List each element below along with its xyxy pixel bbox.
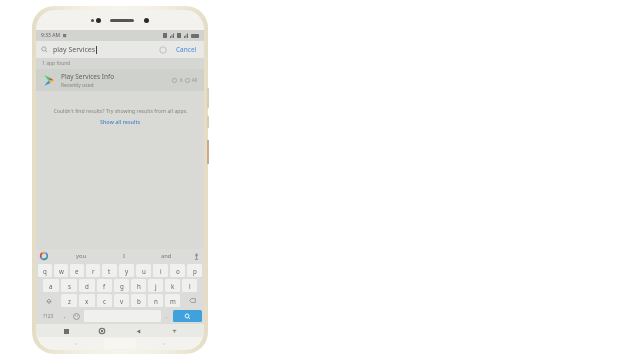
button[interactable]: b [131, 294, 146, 307]
button[interactable]: Google [40, 252, 48, 260]
staticText: i [160, 267, 162, 275]
staticText: 6 [180, 77, 183, 83]
staticText: o [176, 267, 180, 275]
button[interactable]: u [136, 264, 151, 277]
button[interactable]: . [163, 310, 171, 322]
button[interactable]: Emoji [71, 310, 82, 322]
staticText: z [68, 297, 71, 305]
staticText: b [137, 297, 141, 305]
staticText: and [161, 252, 172, 260]
button[interactable]: I [120, 251, 128, 261]
button[interactable]: o [170, 264, 185, 277]
button[interactable]: Clear [159, 46, 167, 54]
button[interactable]: v [114, 294, 129, 307]
staticText: 48 [192, 77, 198, 83]
button[interactable]: q [38, 264, 52, 277]
staticText: n [154, 297, 158, 305]
button[interactable]: t [102, 264, 117, 277]
button[interactable]: Hide keyboard [168, 325, 180, 337]
staticText: t [108, 267, 111, 275]
button[interactable]: Home [96, 325, 108, 337]
button[interactable]: ?123 [38, 310, 59, 322]
button[interactable]: d [79, 279, 95, 292]
button[interactable]: r [86, 264, 100, 277]
button[interactable]: Search [173, 310, 202, 322]
button[interactable]: , [61, 310, 69, 322]
staticText: p [193, 267, 197, 275]
button[interactable]: i [153, 264, 168, 277]
staticText: e [75, 267, 79, 275]
button[interactable]: and [158, 251, 175, 261]
staticText: h [137, 282, 141, 290]
button[interactable]: y [119, 264, 134, 277]
staticText: x [85, 297, 89, 305]
button[interactable]: l [182, 279, 197, 292]
staticText: u [142, 267, 146, 275]
button[interactable]: Recents [60, 325, 72, 337]
staticText: 1 app found [42, 60, 71, 67]
button[interactable]: z [61, 294, 77, 307]
staticText: y [125, 267, 129, 275]
button[interactable]: c [97, 294, 112, 307]
other: Search [41, 46, 48, 53]
staticText: play Services [53, 45, 96, 55]
button[interactable]: s [61, 279, 77, 292]
staticText: v [120, 297, 124, 305]
staticText: w [59, 267, 64, 275]
staticText: k [171, 282, 175, 290]
button[interactable]: Cancel [174, 43, 199, 56]
staticText: c [103, 297, 106, 305]
staticText: a [49, 282, 53, 290]
button[interactable]: g [114, 279, 129, 292]
staticText: r [92, 267, 95, 275]
staticText: l [189, 282, 191, 290]
staticText: . [166, 312, 168, 320]
button[interactable]: k [165, 279, 180, 292]
button[interactable]: Backspace [182, 294, 202, 307]
staticText: Recently used [61, 82, 94, 89]
staticText: g [120, 282, 124, 290]
button[interactable]: you [73, 251, 90, 261]
staticText: j [155, 282, 157, 290]
button[interactable]: e [70, 264, 84, 277]
button[interactable]: w [54, 264, 68, 277]
staticText: d [85, 282, 89, 290]
staticText: I [123, 252, 125, 260]
button[interactable]: x [79, 294, 95, 307]
button[interactable]: j [148, 279, 163, 292]
button[interactable]: a [43, 279, 59, 292]
staticText: Show all results [100, 118, 141, 125]
staticText: you [76, 252, 87, 260]
button[interactable]: p [187, 264, 202, 277]
staticText: Couldn't find results? Try showing resul… [53, 107, 188, 114]
staticText: s [68, 282, 71, 290]
staticText: Cancel [176, 45, 197, 54]
staticText: ?123 [43, 313, 54, 320]
button[interactable]: m [165, 294, 180, 307]
button[interactable]: n [148, 294, 163, 307]
button[interactable]: Back [132, 325, 144, 337]
staticText: q [43, 267, 47, 275]
staticText: , [64, 312, 66, 320]
button[interactable]: Voice input [193, 253, 200, 260]
button[interactable]: Show all results [98, 116, 143, 127]
staticText: f [103, 282, 106, 290]
button[interactable]: h [131, 279, 146, 292]
button[interactable]: Shift [38, 294, 59, 307]
button[interactable]: f [97, 279, 112, 292]
staticText: m [170, 297, 176, 305]
staticText: Play Services Info [61, 72, 115, 81]
button[interactable]: Play Services Info [36, 69, 204, 91]
staticText: 9:33 AM [41, 32, 61, 39]
